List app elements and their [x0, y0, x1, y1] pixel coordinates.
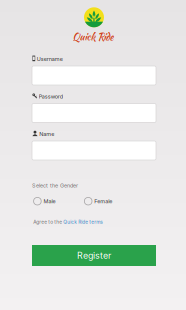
staticText: Quick Ride terms [63, 219, 103, 225]
button[interactable]: Female [84, 197, 139, 205]
staticText: Select the Gender [32, 182, 78, 189]
button[interactable] [32, 141, 156, 160]
staticText: Female [94, 198, 112, 204]
staticText: Password [39, 93, 63, 100]
staticText: Quick Ride [72, 30, 113, 44]
button[interactable]: Quick Ride terms [63, 219, 103, 225]
staticText: Male [43, 198, 55, 204]
button[interactable] [32, 66, 156, 85]
staticText: Username [37, 56, 63, 62]
button[interactable]: Register [32, 245, 156, 266]
staticText: Register [77, 250, 111, 261]
staticText: Agree to the [33, 219, 63, 225]
button[interactable]: Male [34, 197, 84, 205]
staticText: Name [39, 131, 54, 137]
